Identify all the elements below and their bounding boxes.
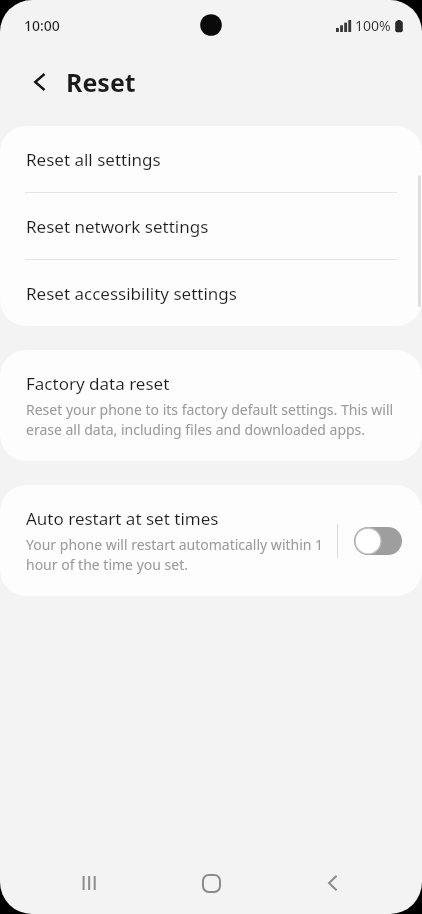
button[interactable]: Home — [179, 852, 243, 914]
button[interactable]: Recents — [58, 852, 122, 914]
button[interactable]: Back — [16, 58, 64, 106]
staticText: Reset all settings — [26, 148, 161, 171]
staticText: Reset your phone to its factory default … — [26, 400, 396, 439]
staticText: Auto restart at set times — [26, 507, 219, 530]
button[interactable]: Auto restart at set times — [0, 485, 422, 596]
button[interactable]: Reset accessibility settings — [0, 260, 422, 326]
staticText: Your phone will restart automatically wi… — [26, 535, 325, 574]
button[interactable]: Auto restart toggle — [354, 527, 402, 555]
button[interactable]: Factory data reset — [0, 350, 422, 461]
button[interactable]: Back — [301, 852, 365, 914]
staticText: Factory data reset — [26, 372, 170, 395]
staticText: 100% — [355, 16, 391, 35]
button[interactable]: Reset network settings — [0, 193, 422, 259]
staticText: Reset accessibility settings — [26, 282, 237, 305]
staticText: Reset network settings — [26, 215, 209, 238]
button[interactable]: Reset all settings — [0, 126, 422, 192]
staticText: 10:00 — [24, 16, 60, 35]
staticText: Reset — [66, 65, 136, 99]
